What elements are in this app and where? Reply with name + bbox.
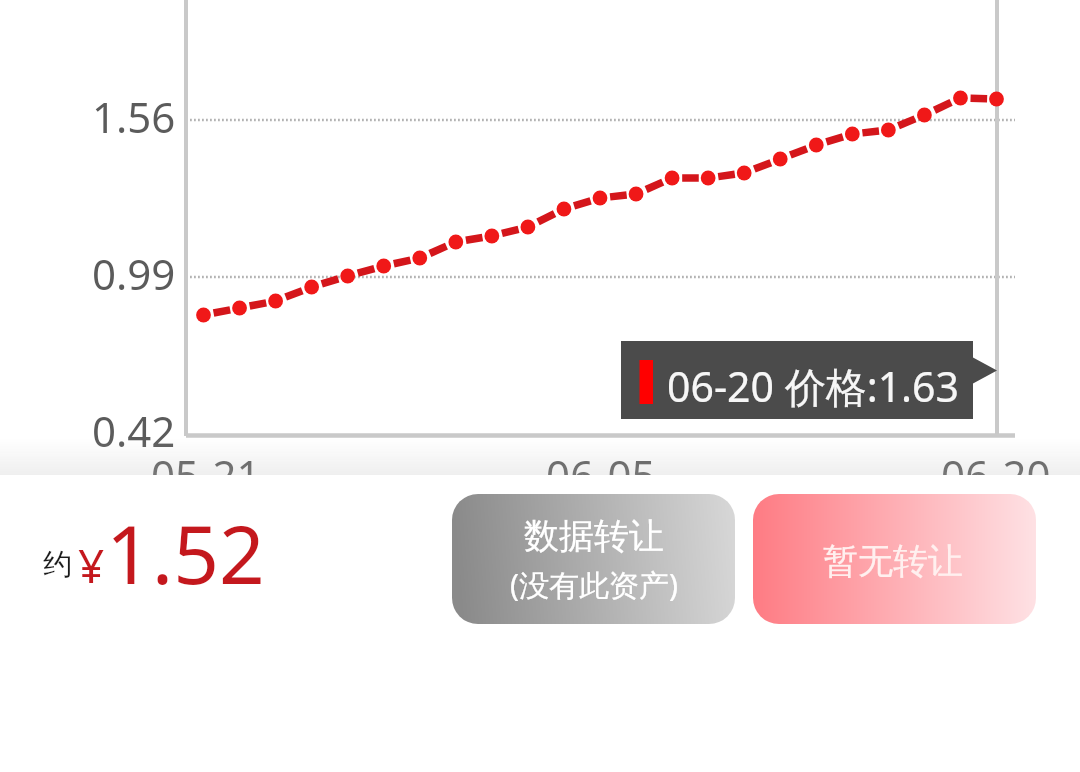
staticText: 0.42 xyxy=(92,402,176,459)
staticText: 06-20 价格:1.63 xyxy=(667,358,960,414)
staticText: 1.56 xyxy=(92,88,176,145)
staticText: 05-21 xyxy=(151,446,261,503)
staticText: 06-05 xyxy=(546,446,656,503)
staticText: 0.99 xyxy=(92,245,176,302)
staticText: 暂无转让 xyxy=(823,539,963,583)
staticText: 1.52 xyxy=(106,498,265,607)
button[interactable]: Price history chart xyxy=(0,0,1080,475)
staticText: 数据转让 xyxy=(524,514,664,558)
staticText: ¥ xyxy=(78,534,105,597)
staticText: 约 xyxy=(43,546,72,583)
staticText: 06-20 xyxy=(941,446,1051,503)
button[interactable]: 暂无转让 xyxy=(753,494,1036,624)
staticText: (没有此资产) xyxy=(510,564,678,605)
button[interactable]: 数据转让 xyxy=(452,494,735,624)
